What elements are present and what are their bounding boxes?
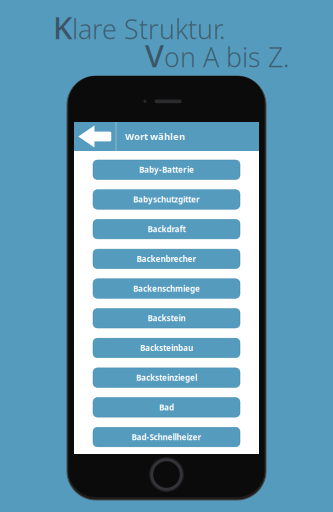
button[interactable]: Babyschutzgitter	[93, 190, 240, 209]
staticText: on A bis Z.	[164, 39, 290, 75]
staticText: Bad-Schnellheizer	[131, 432, 201, 442]
button[interactable]: Backsteinbau	[93, 338, 240, 358]
button[interactable]: Bad	[93, 398, 240, 417]
button[interactable]: Backstein	[93, 308, 240, 328]
staticText: Backstein	[147, 313, 185, 323]
button[interactable]: Backdraft	[93, 219, 240, 239]
staticText: Baby-Batterie	[139, 164, 194, 175]
staticText: Backsteinbau	[140, 343, 193, 353]
staticText: Backdraft	[147, 224, 185, 234]
staticText: Backenbrecher	[136, 253, 196, 264]
button[interactable]: Backenbrecher	[93, 249, 240, 269]
staticText: Babyschutzgitter	[133, 194, 200, 205]
staticText: Bad	[159, 402, 174, 413]
staticText: lare Struktur.	[72, 11, 226, 47]
button[interactable]: Backsteinziegel	[93, 368, 240, 387]
staticText: Wort wählen	[125, 130, 185, 143]
button[interactable]: Backenschmiege	[93, 279, 240, 298]
staticText: K	[53, 7, 72, 48]
staticText: Backenschmiege	[133, 283, 200, 294]
staticText: V	[145, 35, 164, 76]
button[interactable]: Zurück	[74, 122, 115, 151]
button[interactable]: Bad-Schnellheizer	[93, 427, 240, 447]
button[interactable]: Baby-Batterie	[93, 160, 240, 179]
staticText: Backsteinziegel	[136, 372, 197, 383]
